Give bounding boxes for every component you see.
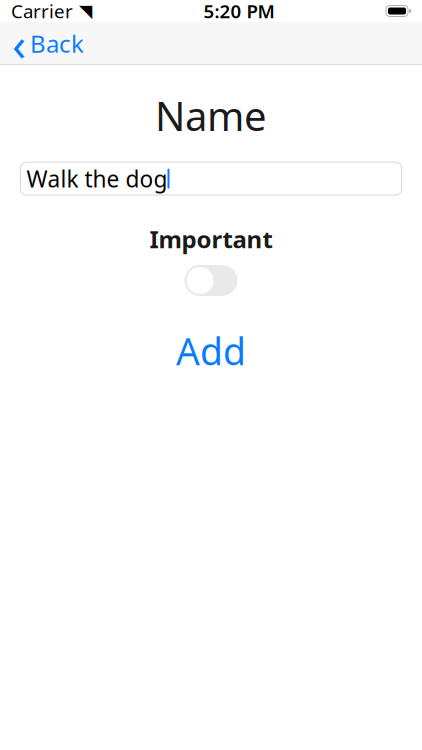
- button[interactable]: Add: [154, 320, 268, 382]
- staticText: 5:20 PM: [203, 0, 274, 23]
- staticText: ‹: [12, 13, 26, 74]
- staticText: Walk the dog: [26, 164, 167, 194]
- button[interactable]: ‹: [0, 22, 96, 64]
- staticText: ◥: [79, 1, 92, 21]
- staticText: Add: [176, 326, 246, 376]
- staticText: Back: [30, 28, 84, 59]
- staticText: Carrier: [11, 0, 73, 23]
- staticText: Name: [155, 89, 267, 142]
- staticText: Important: [149, 223, 272, 255]
- button[interactable]: Important: [184, 265, 237, 296]
